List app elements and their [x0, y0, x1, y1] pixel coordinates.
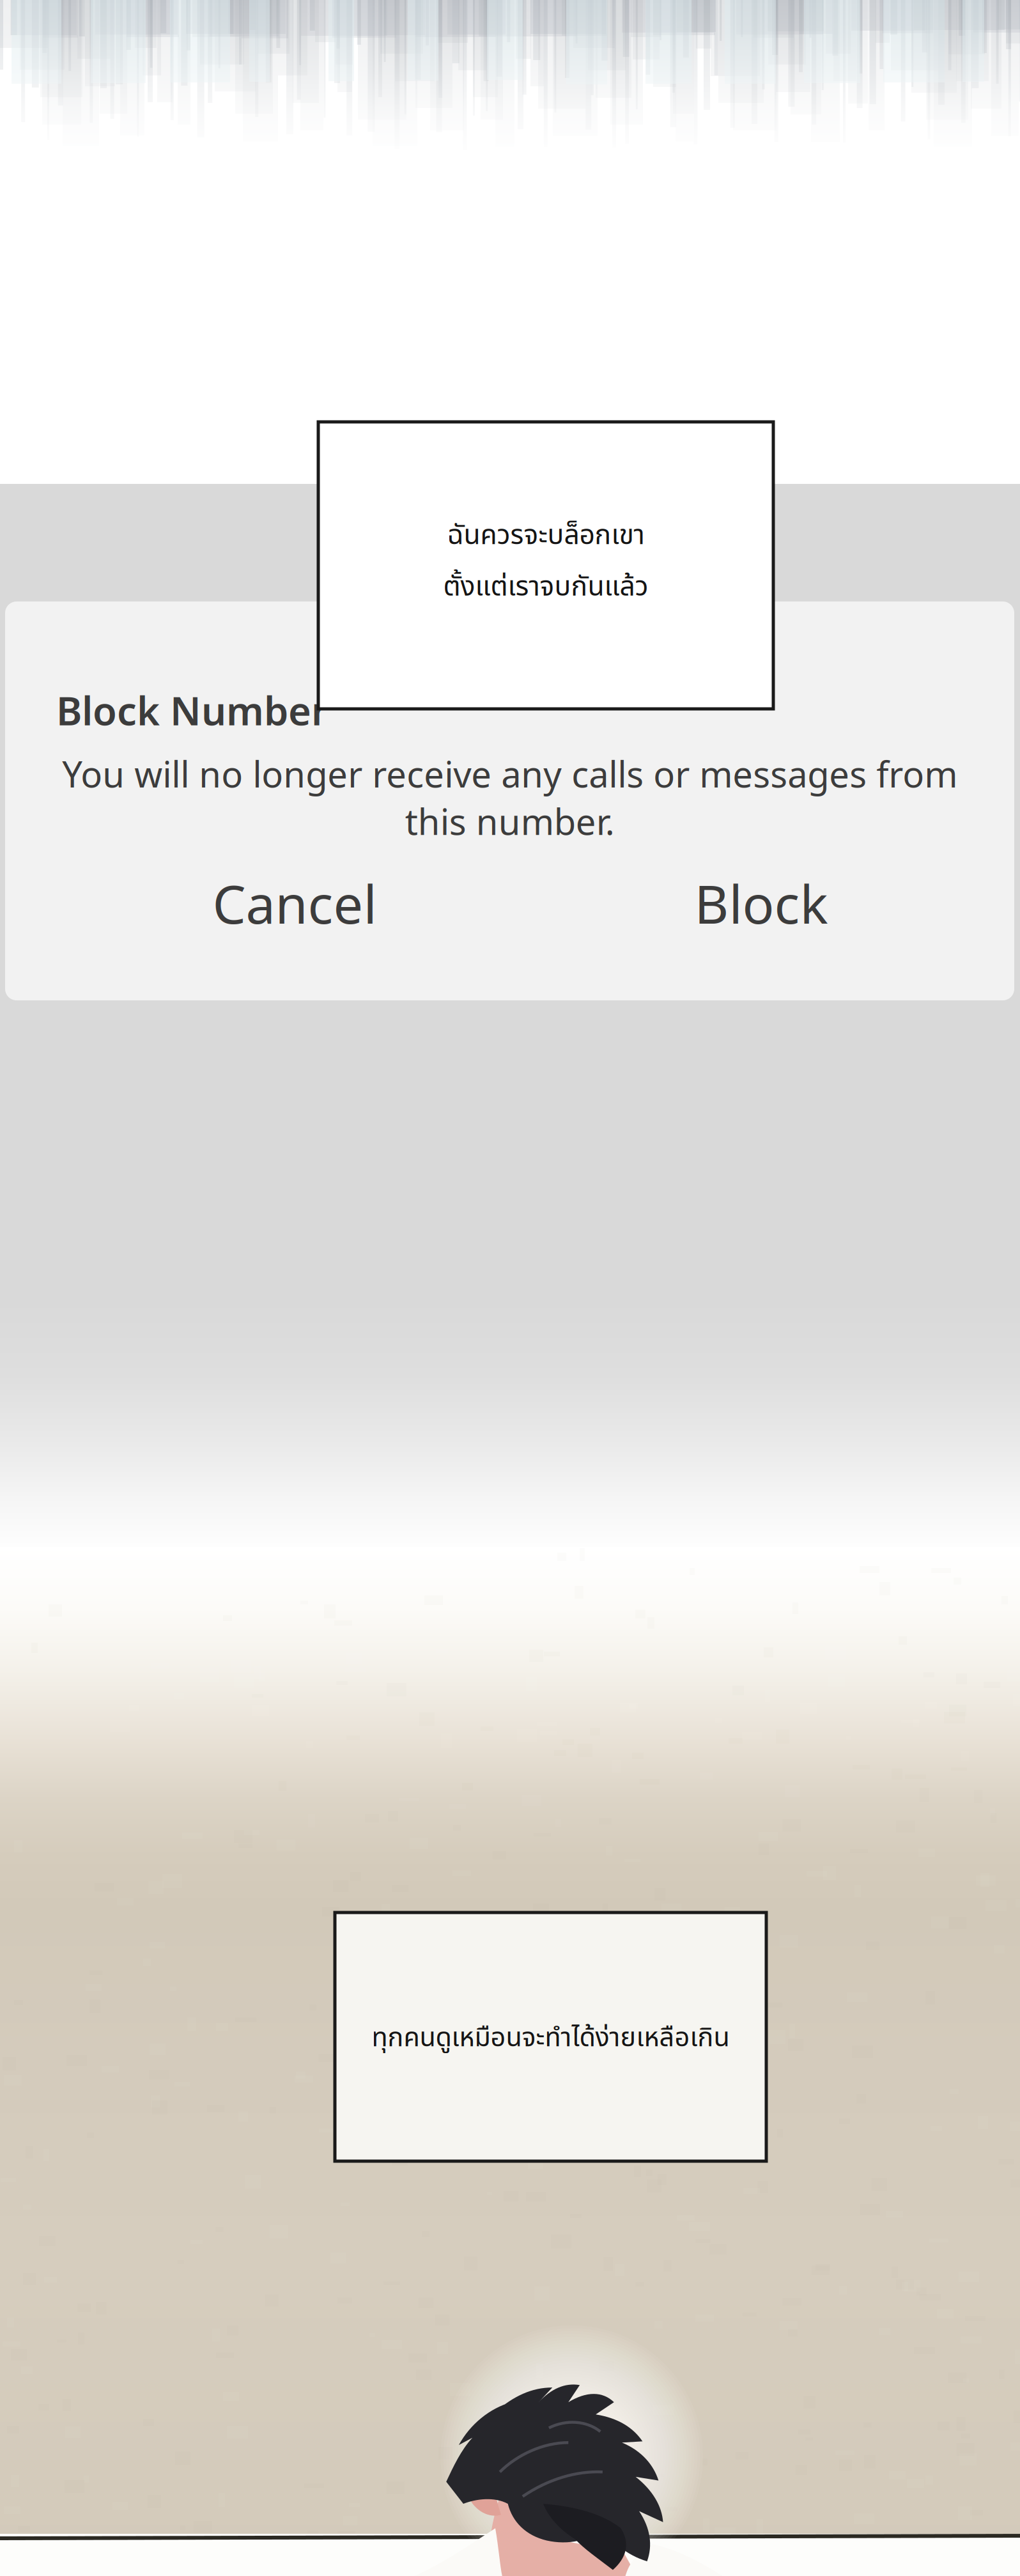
staticText: ฉันควรจะบล็อกเขา	[447, 515, 645, 556]
button[interactable]: Block	[627, 862, 895, 945]
staticText: ทุกคนดูเหมือนจะทำได้ง่ายเหลือเกิน	[372, 2018, 730, 2058]
button[interactable]: Cancel	[160, 862, 429, 945]
staticText: Cancel	[212, 868, 377, 938]
staticText: Block Number	[56, 684, 328, 736]
staticText: You will no longer receive any calls or …	[62, 750, 957, 845]
staticText: ตั้งแต่เราจบกันแล้ว	[443, 567, 648, 608]
staticText: Block	[694, 868, 828, 938]
